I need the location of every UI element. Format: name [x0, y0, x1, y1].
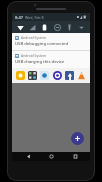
button[interactable]: Add — [71, 132, 84, 145]
button[interactable]: Quick setting 1 — [27, 22, 38, 33]
button[interactable]: Quick setting 5 — [76, 22, 87, 33]
button[interactable]: Quick setting 4 — [64, 22, 75, 33]
button[interactable]: Android System — [12, 33, 90, 50]
button[interactable]: Recents — [67, 152, 83, 161]
button[interactable]: Android System — [12, 51, 90, 68]
button[interactable]: Back — [20, 152, 36, 161]
button[interactable]: App 4 — [64, 70, 75, 81]
staticText: Android System — [21, 35, 47, 40]
staticText: USB charging this device — [15, 59, 65, 65]
staticText: Android System — [21, 53, 47, 58]
button[interactable]: Quick setting 3 — [52, 22, 63, 33]
button[interactable]: App 5 — [76, 70, 87, 81]
button[interactable]: Quick setting 0 — [15, 22, 26, 33]
button[interactable]: App 2 — [39, 70, 50, 81]
button[interactable]: App 0 — [15, 70, 26, 81]
button[interactable]: App 1 — [27, 70, 38, 81]
button[interactable]: Home — [43, 152, 59, 161]
button[interactable]: App 3 — [52, 70, 63, 81]
button[interactable]: Quick setting 2 — [39, 22, 50, 33]
staticText: Wed, Feb 8 — [25, 15, 44, 20]
staticText: 8:47 — [15, 15, 23, 20]
staticText: USB debugging connected — [15, 41, 69, 47]
